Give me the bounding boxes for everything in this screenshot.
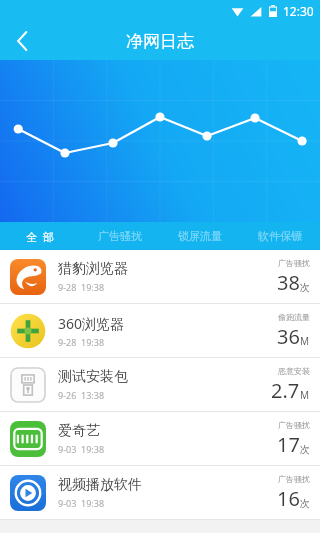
staticText: 偷跑流量	[278, 312, 310, 322]
button[interactable]: 视频播放软件	[0, 466, 320, 519]
button[interactable]: 锁屏流量	[160, 222, 240, 250]
staticText: 12:30	[283, 3, 314, 19]
button[interactable]: 测试安装包	[0, 358, 320, 411]
staticText: 9-03 19:38	[58, 443, 105, 455]
staticText: 锁屏流量	[178, 229, 222, 243]
staticText: M	[300, 388, 310, 402]
staticText: 38	[277, 269, 300, 296]
staticText: 爱奇艺	[58, 422, 100, 440]
staticText: 次	[300, 443, 310, 456]
staticText: 恶意安装	[278, 366, 310, 376]
staticText: 17	[277, 431, 300, 458]
button[interactable]: 全 部	[0, 222, 80, 250]
staticText: 视频播放软件	[58, 476, 142, 494]
button[interactable]: Back	[0, 22, 44, 60]
button[interactable]: 广告骚扰	[80, 222, 160, 250]
staticText: 9-26 13:38	[58, 389, 105, 401]
staticText: 广告骚扰	[278, 474, 310, 484]
staticText: 猎豹浏览器	[58, 260, 128, 278]
button[interactable]: 猎豹浏览器	[0, 250, 320, 303]
staticText: 2.7	[271, 377, 300, 404]
staticText: 广告骚扰	[98, 229, 142, 243]
staticText: 全 部	[26, 229, 54, 244]
button[interactable]: 软件保镖	[240, 222, 320, 250]
staticText: 次	[300, 497, 310, 510]
staticText: M	[300, 334, 310, 348]
staticText: 软件保镖	[258, 229, 302, 243]
staticText: 广告骚扰	[278, 420, 310, 430]
staticText: 9-28 19:38	[58, 281, 105, 293]
staticText: 9-28 19:38	[58, 336, 105, 348]
staticText: 测试安装包	[58, 368, 128, 386]
button[interactable]: 爱奇艺	[0, 412, 320, 465]
staticText: 36	[277, 323, 300, 350]
staticText: 净网日志	[126, 31, 194, 52]
staticText: 16	[277, 485, 300, 512]
staticText: 360浏览器	[58, 314, 125, 333]
button[interactable]: 360浏览器	[0, 304, 320, 357]
staticText: 次	[300, 281, 310, 294]
staticText: 广告骚扰	[278, 258, 310, 268]
staticText: 9-03 19:38	[58, 497, 105, 509]
